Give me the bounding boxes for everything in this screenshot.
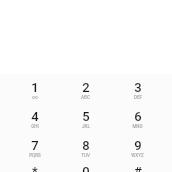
staticText: MNO <box>132 124 143 129</box>
staticText: 9 <box>134 138 142 151</box>
staticText: TUV <box>81 153 90 158</box>
staticText: 4 <box>31 109 39 122</box>
staticText: PQRS <box>29 153 41 158</box>
button[interactable]: Seven P Q R S <box>9 135 60 165</box>
button[interactable]: Six M N O <box>112 106 163 136</box>
staticText: GHI <box>31 124 39 129</box>
button[interactable]: One, voicemail <box>9 77 60 107</box>
staticText: 2 <box>82 80 90 93</box>
button[interactable]: Star <box>9 161 60 172</box>
button[interactable]: Eight T U V <box>60 135 111 165</box>
staticText: JKL <box>82 124 90 129</box>
staticText: 0 <box>82 164 90 172</box>
button[interactable]: Five J K L <box>60 106 111 136</box>
staticText: ABC <box>81 95 90 100</box>
staticText: DEF <box>134 95 142 100</box>
staticText: WXYZ <box>131 153 144 158</box>
staticText: 5 <box>82 109 90 122</box>
staticText: 1 <box>31 80 39 93</box>
button[interactable]: Four G H I <box>9 106 60 136</box>
staticText: 8 <box>82 138 90 151</box>
staticText: 7 <box>31 138 39 151</box>
button[interactable]: Zero plus <box>60 161 111 172</box>
button[interactable]: Two A B C <box>60 77 111 107</box>
staticText: * <box>32 164 38 172</box>
staticText: 3 <box>134 80 142 93</box>
staticText: # <box>134 164 142 172</box>
staticText: 6 <box>134 109 142 122</box>
button[interactable]: Nine W X Y Z <box>112 135 163 165</box>
button[interactable]: Pound <box>112 161 163 172</box>
button[interactable]: Three D E F <box>112 77 163 107</box>
